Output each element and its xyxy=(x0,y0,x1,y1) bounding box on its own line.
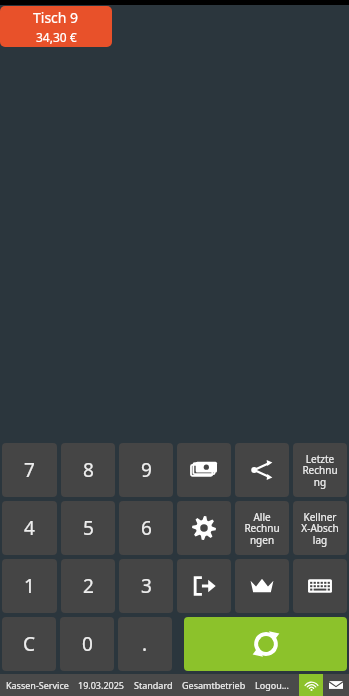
button[interactable]: Letzte Rechnu ng xyxy=(293,443,347,497)
staticText: 5 xyxy=(83,515,94,541)
staticText: 1 xyxy=(24,573,35,599)
button[interactable]: 4 xyxy=(2,501,57,555)
button[interactable]: 6 xyxy=(119,501,173,555)
staticText: Tisch 9 xyxy=(33,8,79,27)
button[interactable]: Kellner X-Absch lag xyxy=(293,501,347,555)
button[interactable]: Sync order xyxy=(184,617,347,671)
button[interactable]: 3 xyxy=(119,559,173,613)
staticText: 0 xyxy=(82,631,93,657)
button[interactable]: 7 xyxy=(2,443,57,497)
button[interactable]: 0 xyxy=(60,617,114,671)
staticText: 2 xyxy=(83,573,94,599)
staticText: 19.03.2025 xyxy=(78,679,125,691)
button[interactable]: Logout xyxy=(177,559,231,613)
button[interactable]: Alle Rechnu ngen xyxy=(235,501,289,555)
button[interactable]: Settings xyxy=(177,501,231,555)
staticText: 7 xyxy=(24,457,35,483)
button[interactable]: . xyxy=(118,617,172,671)
staticText: Kassen-Service xyxy=(6,679,69,691)
staticText: Kellner X-Absch lag xyxy=(301,510,339,547)
staticText: 34,30 € xyxy=(36,29,77,45)
button[interactable]: Network status xyxy=(299,674,323,696)
staticText: 9 xyxy=(141,457,152,483)
staticText: 4 xyxy=(24,515,35,541)
button[interactable]: 2 xyxy=(61,559,115,613)
staticText: Logou... xyxy=(255,679,289,691)
staticText: 8 xyxy=(83,457,94,483)
staticText: Letzte Rechnu ng xyxy=(302,452,338,489)
staticText: . xyxy=(142,631,148,657)
button[interactable]: Tisch 9 xyxy=(0,6,112,47)
button[interactable]: 5 xyxy=(61,501,115,555)
button[interactable]: Keyboard xyxy=(293,559,347,613)
staticText: 3 xyxy=(141,573,152,599)
button[interactable]: Messages xyxy=(323,674,349,696)
staticText: Alle Rechnu ngen xyxy=(244,510,280,547)
staticText: Gesamtbetrieb xyxy=(182,679,246,691)
staticText: C xyxy=(23,631,36,657)
button[interactable]: 1 xyxy=(2,559,57,613)
button[interactable]: Split bill xyxy=(235,443,289,497)
button[interactable]: C xyxy=(2,617,56,671)
button[interactable]: 9 xyxy=(119,443,173,497)
button[interactable]: Cash payment xyxy=(177,443,231,497)
button[interactable]: Manager xyxy=(235,559,289,613)
staticText: 6 xyxy=(141,515,152,541)
staticText: Standard xyxy=(134,679,173,691)
button[interactable]: 8 xyxy=(61,443,115,497)
